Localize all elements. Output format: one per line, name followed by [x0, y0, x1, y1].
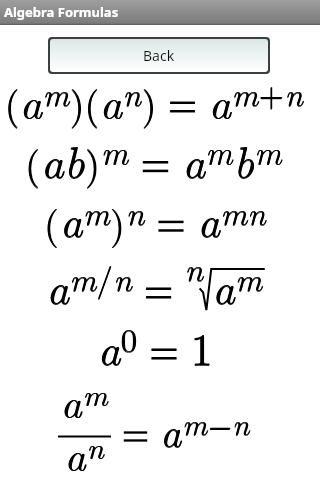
button[interactable]: Back [50, 39, 268, 72]
staticText: Back [143, 46, 175, 65]
staticText: Algebra Formulas [4, 3, 119, 21]
